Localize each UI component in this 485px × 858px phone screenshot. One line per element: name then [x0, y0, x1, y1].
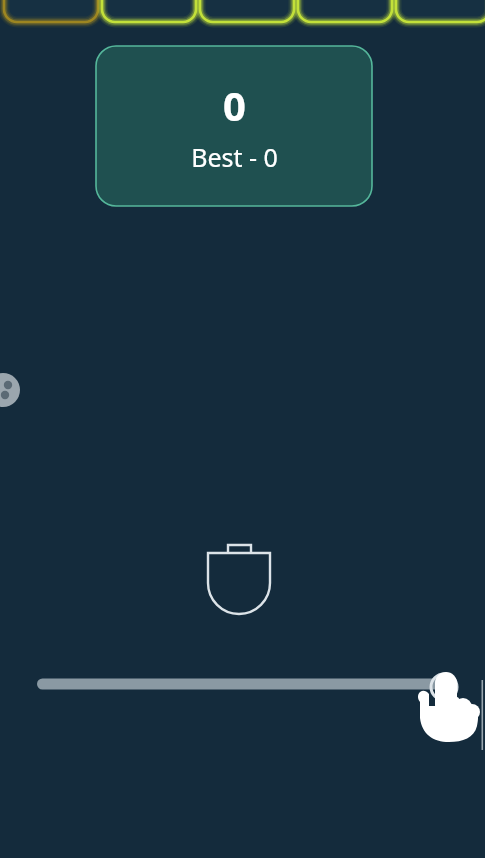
button[interactable]: Speed slider [30, 665, 460, 705]
staticText: 0 [223, 78, 246, 132]
button[interactable]: 0 [96, 46, 372, 206]
button[interactable]: Basket paddle [200, 538, 280, 622]
staticText: Best - 0 [191, 140, 278, 174]
